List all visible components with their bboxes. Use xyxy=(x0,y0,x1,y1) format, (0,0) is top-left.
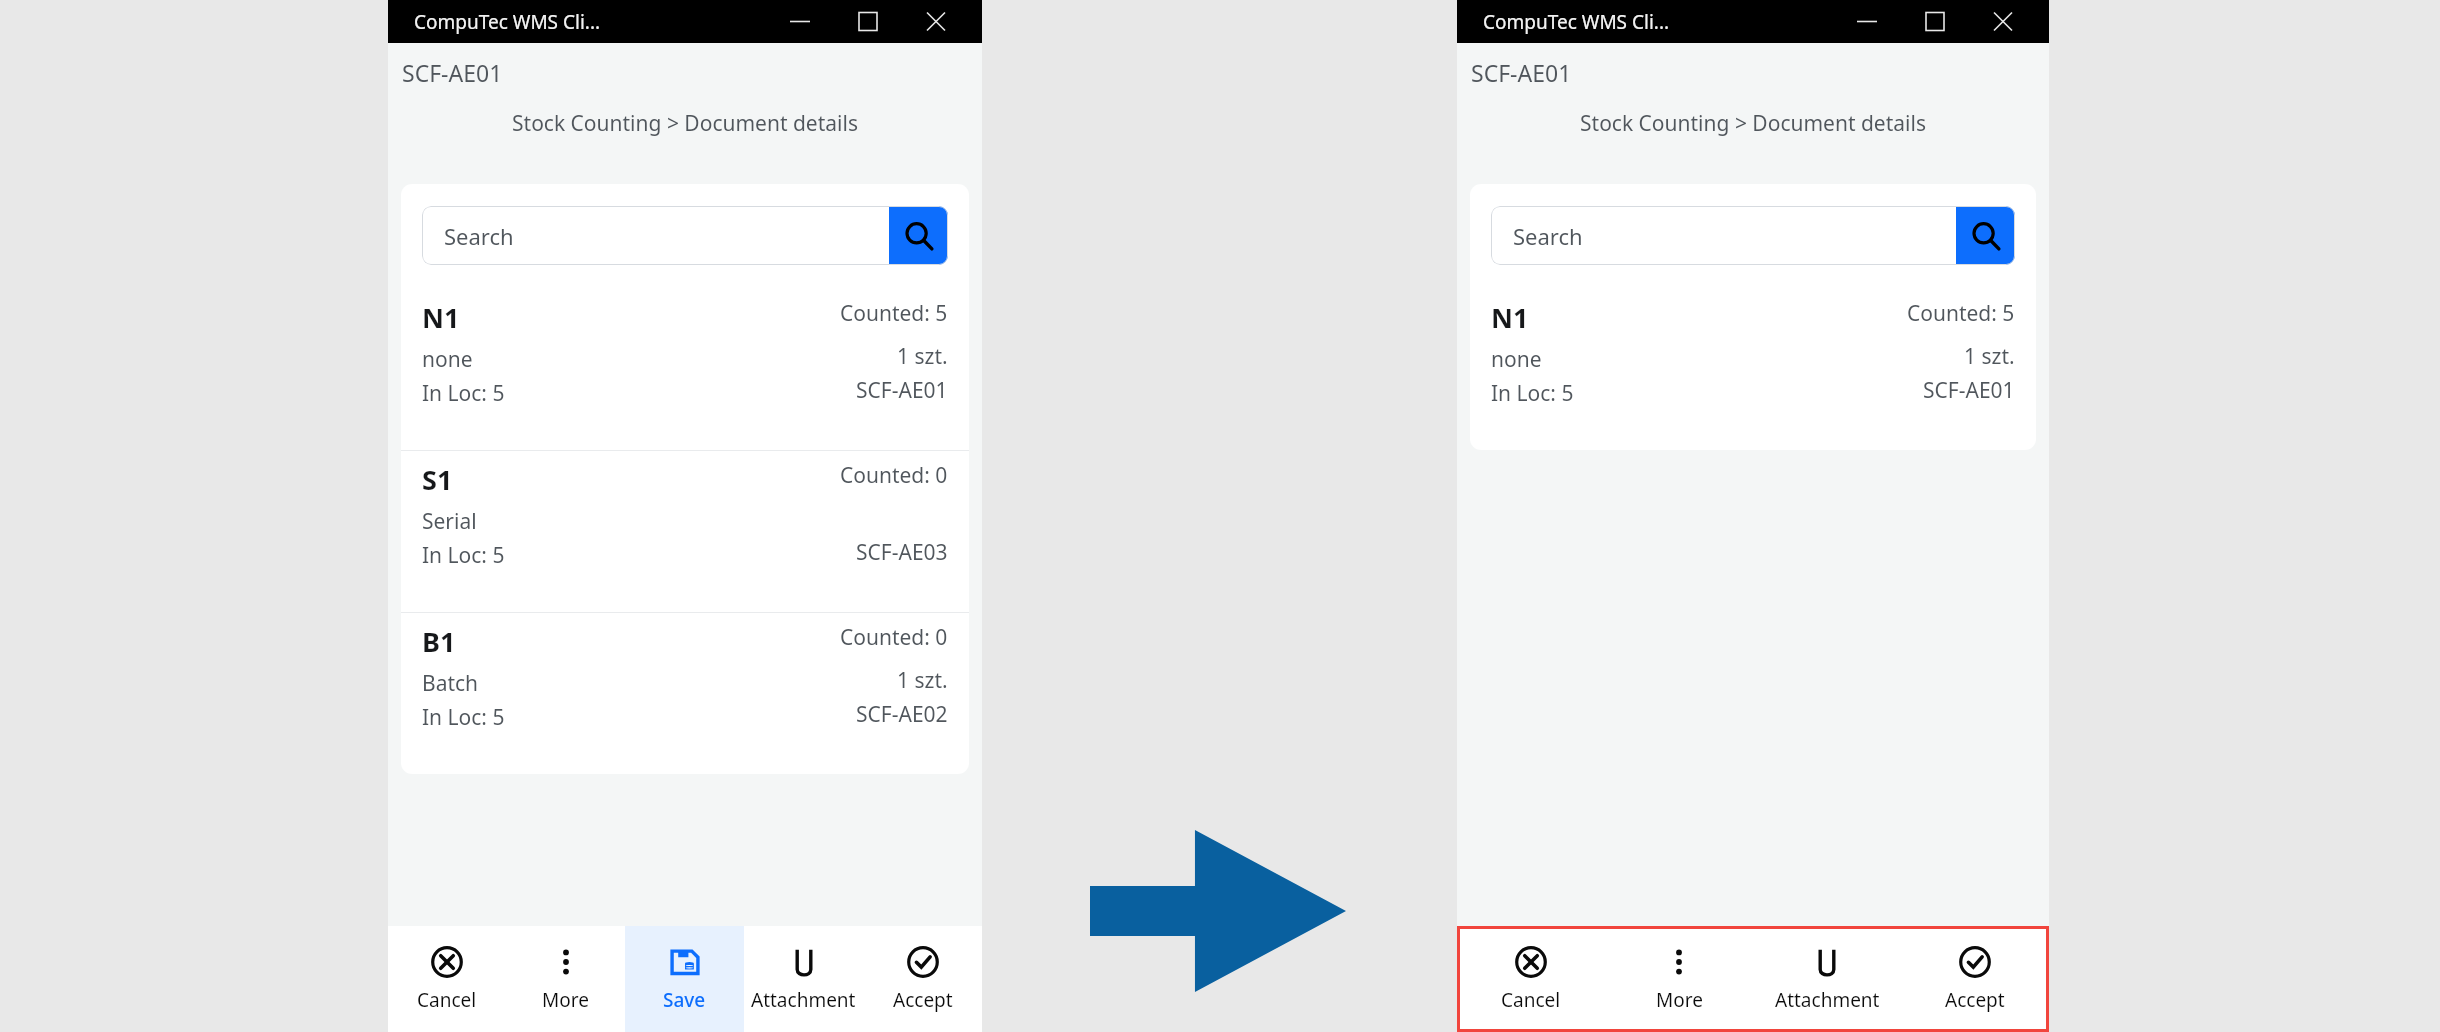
button[interactable]: B1 xyxy=(401,613,969,774)
staticText: Attachment xyxy=(751,987,856,1013)
staticText: Stock Counting > Document details xyxy=(388,109,982,138)
staticText: SCF-AE01 xyxy=(1471,57,1572,88)
staticText: Serial xyxy=(422,507,477,536)
button[interactable]: More xyxy=(506,926,625,1032)
staticText: Batch xyxy=(422,669,479,698)
staticText: Counted: 5 xyxy=(1907,299,2015,328)
staticText: Accept xyxy=(893,987,953,1013)
button[interactable]: Close xyxy=(902,0,970,43)
button[interactable]: Save xyxy=(625,926,744,1032)
staticText: SCF-AE01 xyxy=(1923,376,2015,405)
button[interactable]: More xyxy=(1605,926,1753,1032)
staticText: 1 szt. xyxy=(897,342,948,371)
staticText: Counted: 0 xyxy=(840,461,948,490)
button[interactable]: Attachment xyxy=(1753,926,1901,1032)
staticText: In Loc: 5 xyxy=(422,703,505,732)
staticText: Attachment xyxy=(1775,987,1880,1013)
staticText: Cancel xyxy=(417,987,477,1013)
staticText: SCF-AE03 xyxy=(856,538,948,567)
staticText: Save xyxy=(663,987,706,1013)
button[interactable]: N1 xyxy=(1470,289,2036,450)
staticText: In Loc: 5 xyxy=(422,379,505,408)
staticText: S1 xyxy=(422,461,453,498)
staticText: none xyxy=(422,345,473,374)
button[interactable]: Accept xyxy=(1901,926,2049,1032)
staticText: Search xyxy=(1513,221,1956,251)
button[interactable]: Search xyxy=(422,206,948,265)
staticText: SCF-AE01 xyxy=(856,376,948,405)
staticText: 1 szt. xyxy=(897,666,948,695)
staticText: SCF-AE02 xyxy=(856,700,948,729)
staticText: Counted: 5 xyxy=(840,299,948,328)
staticText: Search xyxy=(444,221,889,251)
staticText: In Loc: 5 xyxy=(1491,379,1574,408)
staticText: N1 xyxy=(1491,299,1529,336)
staticText: More xyxy=(542,987,589,1013)
button[interactable]: Attachment xyxy=(744,926,863,1032)
button[interactable]: Minimize xyxy=(1833,0,1901,43)
button[interactable]: Close xyxy=(1969,0,2037,43)
button[interactable]: Accept xyxy=(863,926,982,1032)
staticText: CompuTec WMS Cli... xyxy=(1483,9,1670,35)
button[interactable]: N1 xyxy=(401,289,969,450)
staticText: none xyxy=(1491,345,1542,374)
staticText: N1 xyxy=(422,299,460,336)
staticText: In Loc: 5 xyxy=(422,541,505,570)
button[interactable]: Maximize xyxy=(834,0,902,43)
button[interactable]: Maximize xyxy=(1901,0,1969,43)
staticText: CompuTec WMS Cli... xyxy=(414,9,601,35)
button[interactable]: Search xyxy=(1956,206,2015,265)
staticText: More xyxy=(1656,987,1703,1013)
staticText: Cancel xyxy=(1501,987,1561,1013)
staticText: SCF-AE01 xyxy=(402,57,503,88)
button[interactable]: Search xyxy=(1491,206,2015,265)
staticText: 1 szt. xyxy=(1964,342,2015,371)
button[interactable]: S1 xyxy=(401,451,969,612)
staticText: Counted: 0 xyxy=(840,623,948,652)
button[interactable]: Search xyxy=(889,206,948,265)
button[interactable]: Minimize xyxy=(766,0,834,43)
button[interactable]: Cancel xyxy=(1457,926,1605,1032)
button[interactable]: Cancel xyxy=(388,926,506,1032)
staticText: Stock Counting > Document details xyxy=(1457,109,2049,138)
staticText: Accept xyxy=(1945,987,2005,1013)
staticText: B1 xyxy=(422,623,456,660)
